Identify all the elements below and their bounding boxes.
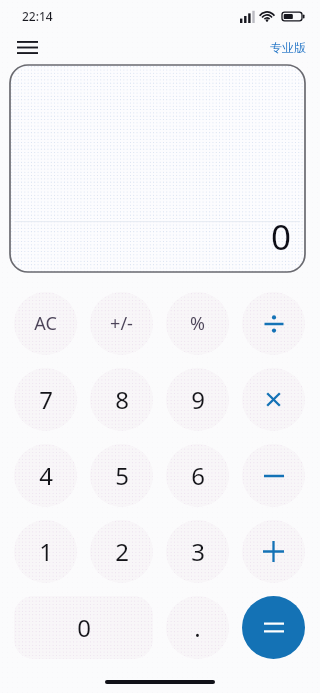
staticText: AC	[34, 311, 57, 336]
button[interactable]: 1	[14, 520, 77, 583]
staticText: %	[190, 311, 205, 336]
staticText: 4	[39, 459, 53, 492]
button[interactable]: .	[166, 596, 229, 659]
staticText: +/-	[110, 311, 133, 336]
button[interactable]: 9	[166, 368, 229, 431]
staticText: 0	[77, 611, 91, 644]
staticText: 2	[115, 535, 129, 568]
button[interactable]: 7	[14, 368, 77, 431]
button[interactable]: Minus	[242, 444, 305, 507]
staticText: 专业版	[270, 40, 306, 55]
staticText: 5	[115, 459, 129, 492]
button[interactable]: Multiply	[242, 368, 305, 431]
button[interactable]: 3	[166, 520, 229, 583]
button[interactable]: Menu	[8, 32, 46, 62]
button[interactable]: Divide	[242, 292, 305, 355]
staticText: 3	[191, 535, 205, 568]
button[interactable]: 8	[90, 368, 153, 431]
button[interactable]: 4	[14, 444, 77, 507]
button[interactable]: AC	[14, 292, 77, 355]
button[interactable]: 6	[166, 444, 229, 507]
button[interactable]: 专业版	[265, 36, 311, 59]
button[interactable]: +/-	[90, 292, 153, 355]
button[interactable]: 5	[90, 444, 153, 507]
staticText: 7	[39, 383, 53, 416]
button[interactable]: 0	[14, 596, 153, 659]
staticText: .	[194, 611, 201, 644]
button[interactable]: %	[166, 292, 229, 355]
staticText: 9	[191, 383, 205, 416]
button[interactable]: Plus	[242, 520, 305, 583]
staticText: 22:14	[22, 8, 53, 24]
button[interactable]: 2	[90, 520, 153, 583]
button[interactable]: Equals	[242, 596, 305, 659]
staticText: 6	[191, 459, 205, 492]
staticText: 0	[271, 213, 292, 261]
staticText: 1	[39, 535, 53, 568]
staticText: 8	[115, 383, 129, 416]
